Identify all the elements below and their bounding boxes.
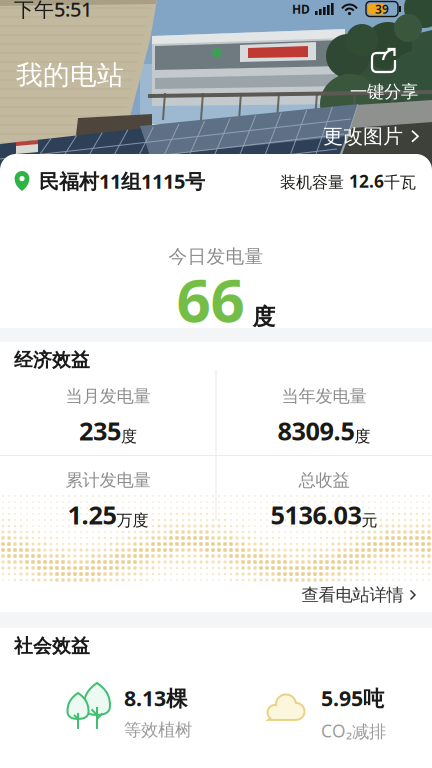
staticText: 8309.5度	[277, 414, 370, 447]
staticText: 今日发电量	[168, 245, 263, 268]
staticText: 一键分享	[350, 81, 418, 102]
staticText: 民福村11组1115号	[39, 168, 205, 194]
staticText: 我的电站	[16, 59, 124, 92]
staticText: 235度	[79, 414, 137, 447]
staticText: 经济效益	[14, 348, 90, 371]
staticText: 更改图片	[323, 124, 403, 149]
staticText: 社会效益	[14, 634, 90, 657]
staticText: 1.25万度	[67, 498, 148, 531]
staticText: 累计发电量	[65, 469, 150, 491]
staticText: 5.95吨	[321, 684, 384, 712]
staticText: 等效植树	[124, 719, 192, 741]
staticText: 当年发电量	[281, 385, 366, 407]
staticText: 总收益	[298, 469, 349, 491]
staticText: 39	[375, 1, 389, 17]
staticText: CO₂减排	[321, 719, 386, 742]
staticText: 查看电站详情	[301, 584, 403, 606]
staticText: HD	[292, 1, 310, 17]
staticText: 当月发电量	[65, 385, 150, 407]
staticText: 8.13棵	[124, 684, 187, 712]
staticText: 66	[176, 259, 244, 339]
staticText: 5136.03元	[270, 498, 377, 531]
staticText: 装机容量 12.6千瓦	[280, 169, 416, 192]
staticText: 度	[252, 303, 275, 331]
staticText: 下午5:51	[14, 0, 92, 22]
